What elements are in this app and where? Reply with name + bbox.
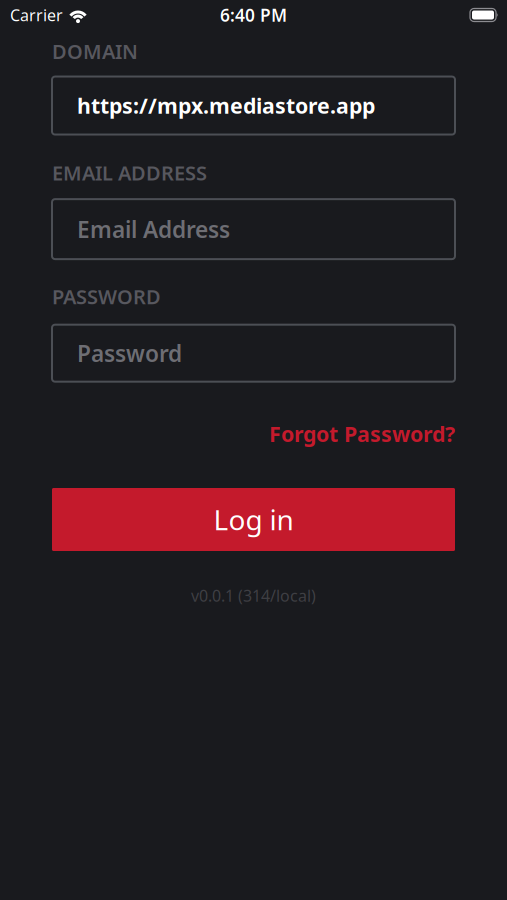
textField[interactable]: Email Address: [52, 199, 455, 259]
staticText: Email Address: [77, 214, 230, 244]
button[interactable]: Log in: [52, 488, 455, 551]
staticText: Forgot Password?: [269, 420, 455, 448]
staticText: Password: [77, 338, 182, 368]
textField[interactable]: https://mpx.mediastore.app: [52, 77, 455, 135]
staticText: 6:40 PM: [220, 3, 287, 26]
staticText: PASSWORD: [52, 283, 161, 310]
staticText: EMAIL ADDRESS: [52, 160, 207, 186]
secureTextField[interactable]: Password: [52, 325, 455, 382]
staticText: https://mpx.mediastore.app: [77, 91, 375, 120]
staticText: v0.0.1 (314/local): [191, 585, 316, 606]
staticText: Carrier: [10, 4, 63, 26]
button[interactable]: Forgot Password?: [269, 420, 455, 448]
staticText: DOMAIN: [52, 38, 138, 65]
staticText: Log in: [213, 501, 293, 538]
